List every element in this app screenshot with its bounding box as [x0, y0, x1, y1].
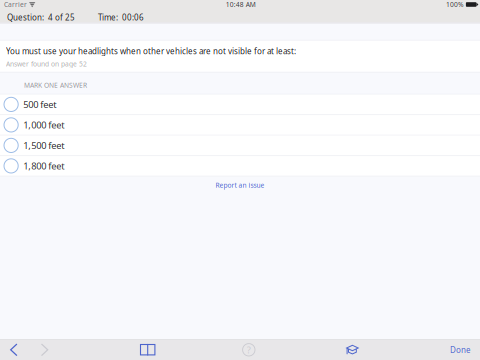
button[interactable]: Done: [441, 340, 480, 360]
button[interactable]: 1,500 feet: [0, 136, 480, 156]
staticText: 1,800 feet: [23, 160, 64, 172]
button[interactable]: 500 feet: [0, 95, 480, 115]
staticText: MARK ONE ANSWER: [24, 81, 87, 90]
staticText: Done: [450, 344, 471, 355]
staticText: 1,500 feet: [23, 139, 64, 152]
staticText: Question: 4 of 25: [7, 12, 75, 23]
staticText: 10:48 AM: [226, 0, 256, 9]
button[interactable]: 1,000 feet: [0, 115, 480, 136]
staticText: You must use your headlights when other …: [6, 46, 296, 56]
button[interactable]: Report an issue: [0, 177, 480, 200]
staticText: 1,000 feet: [23, 119, 64, 131]
button[interactable]: Study: [337, 340, 367, 360]
staticText: Time: 00:06: [98, 12, 144, 23]
button[interactable]: Handbook: [135, 340, 160, 360]
button[interactable]: Previous question: [0, 340, 28, 360]
staticText: 500 feet: [23, 98, 56, 111]
button[interactable]: Next question: [28, 340, 62, 360]
button[interactable]: 1,800 feet: [0, 156, 480, 177]
button[interactable]: Explanation: [234, 340, 264, 360]
staticText: Report an issue: [215, 181, 264, 190]
staticText: ?: [247, 344, 251, 356]
staticText: 100%: [446, 0, 464, 9]
staticText: Carrier: [4, 0, 27, 9]
staticText: Answer found on page 52: [6, 59, 87, 68]
